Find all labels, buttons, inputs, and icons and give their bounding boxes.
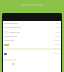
button[interactable] — [3, 36, 61, 40]
button[interactable] — [3, 27, 61, 31]
button[interactable] — [3, 23, 61, 27]
button[interactable] — [0, 0, 64, 13]
button[interactable] — [3, 44, 61, 48]
button[interactable] — [3, 53, 61, 57]
button[interactable] — [3, 31, 61, 36]
button[interactable] — [3, 40, 61, 44]
